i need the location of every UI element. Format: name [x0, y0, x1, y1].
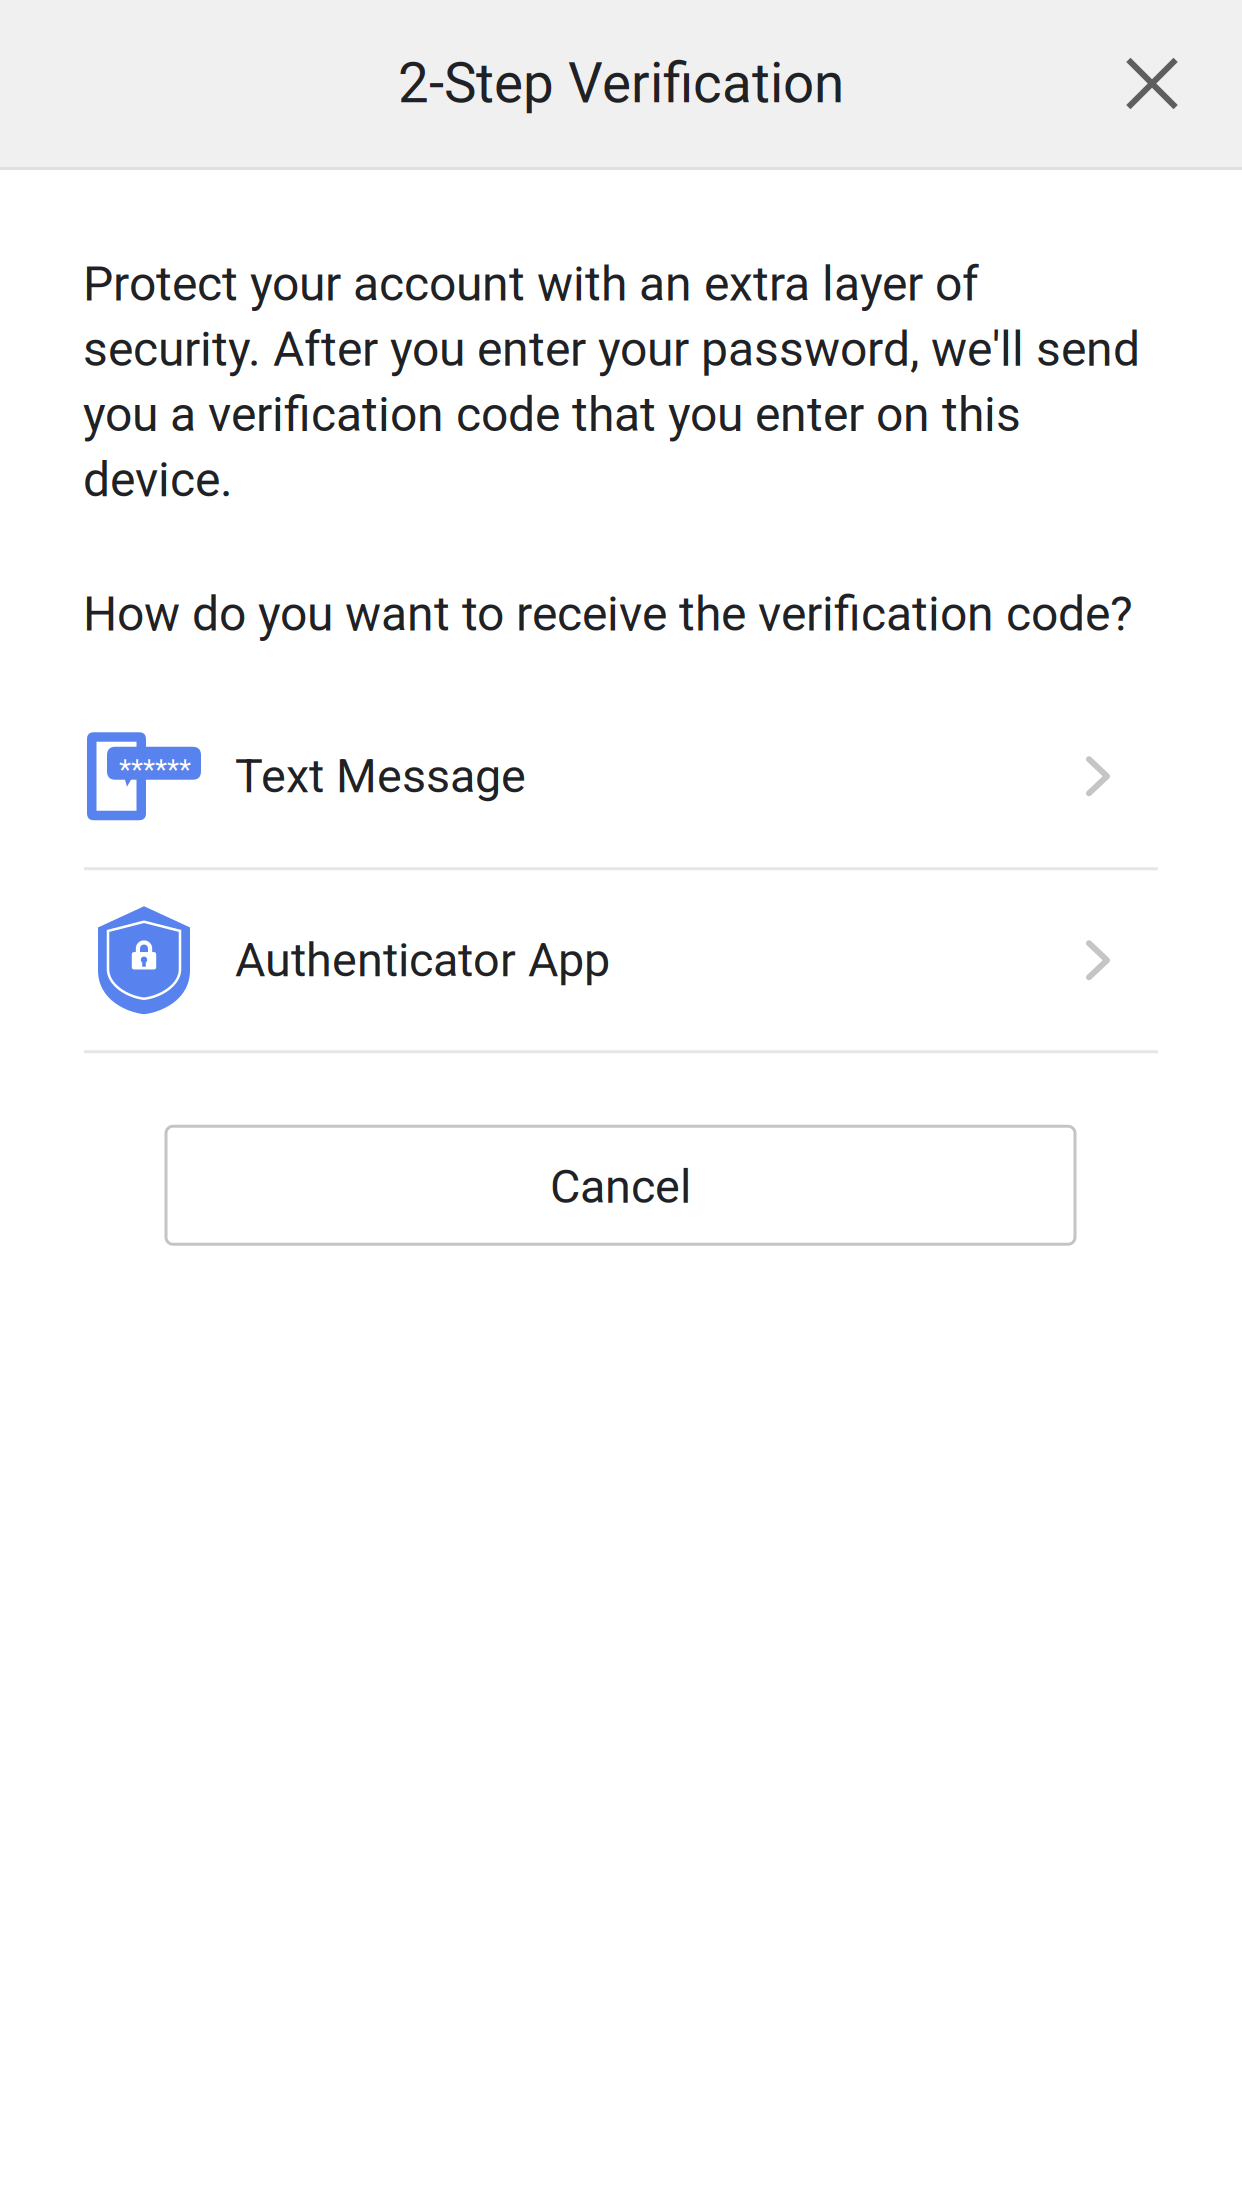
staticText: Authenticator App [235, 933, 610, 988]
staticText: Text Message [235, 749, 526, 804]
button[interactable]: Authenticator App [0, 870, 1242, 1050]
button[interactable]: Close [1090, 21, 1214, 145]
staticText: ****** [119, 753, 191, 786]
button[interactable]: ****** [0, 685, 1242, 867]
staticText: Cancel [550, 1159, 691, 1214]
staticText: How do you want to receive the verificat… [83, 586, 1133, 642]
button[interactable]: Cancel [166, 1126, 1075, 1244]
staticText: Protect your account with an extra layer… [83, 256, 1140, 508]
staticText: 2-Step Verification [398, 51, 844, 116]
